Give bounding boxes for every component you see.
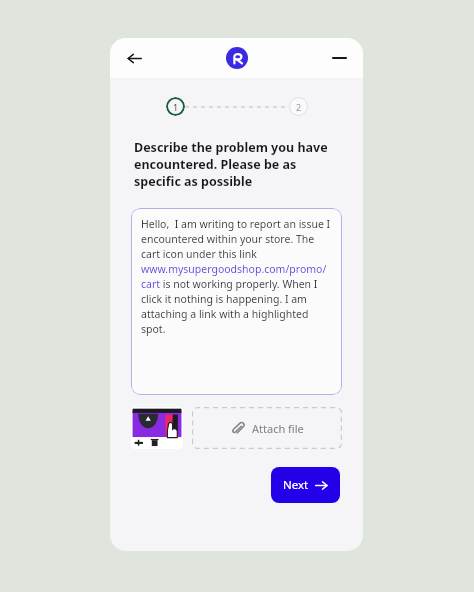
- button[interactable]: 2: [289, 97, 308, 116]
- button[interactable]: Logo: [226, 47, 248, 69]
- button[interactable]: Hello, I am writing to report an issue I…: [131, 208, 342, 395]
- staticText: Next: [283, 477, 309, 493]
- button[interactable]: Back: [120, 44, 148, 72]
- staticText: Attach file: [252, 421, 304, 436]
- button[interactable]: Attached screenshot: [131, 407, 183, 449]
- button[interactable]: Minimize: [325, 44, 353, 72]
- button[interactable]: Attach file: [192, 407, 342, 449]
- button[interactable]: Next: [271, 467, 340, 503]
- button[interactable]: 1: [166, 97, 185, 116]
- staticText: 1: [173, 101, 179, 113]
- staticText: Describe the problem you have encountere…: [134, 139, 343, 190]
- staticText: 2: [296, 101, 302, 113]
- staticText: Hello, I am writing to report an issue I…: [141, 217, 332, 336]
